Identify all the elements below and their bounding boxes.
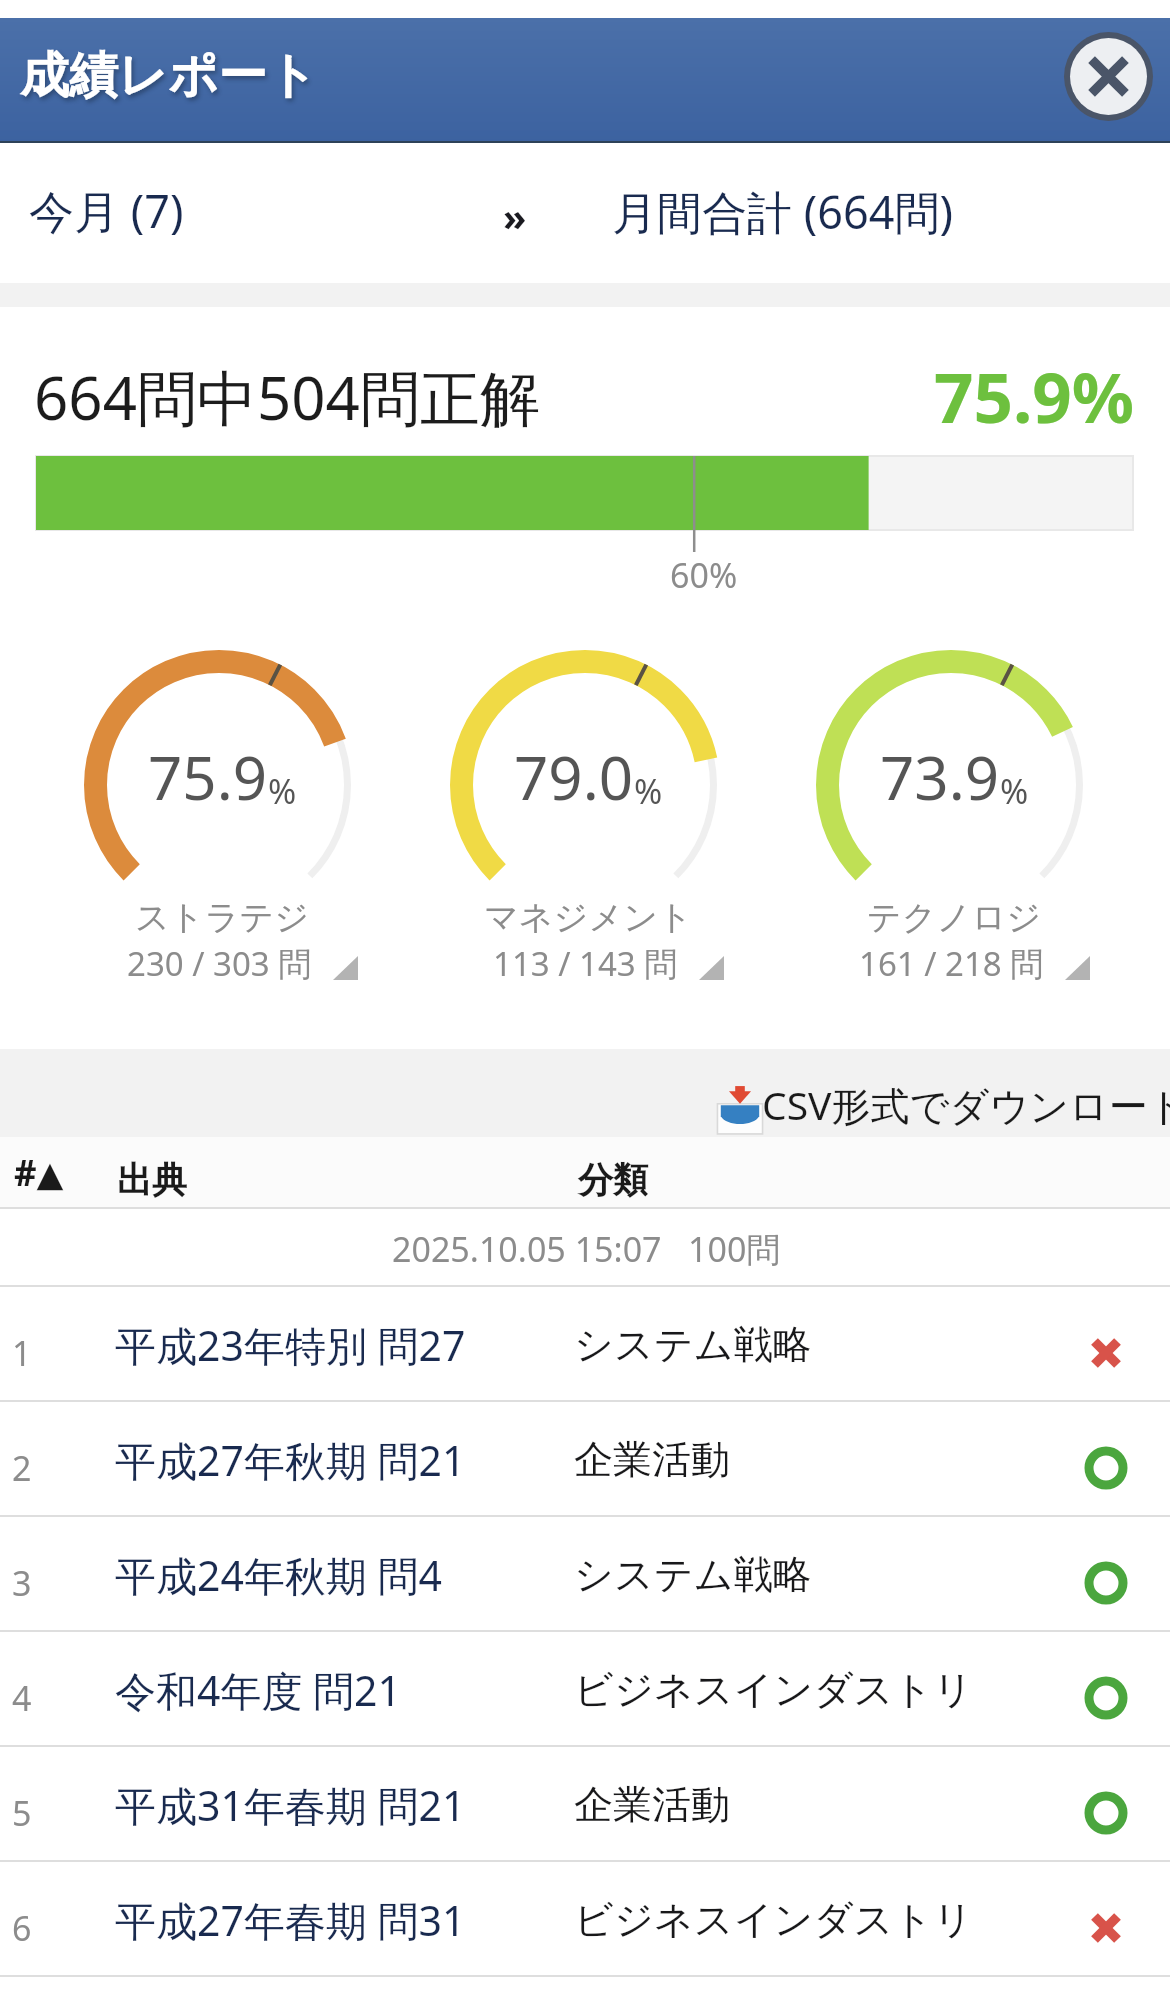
button[interactable]: 6 [0, 1862, 1170, 1977]
button[interactable]: 月間合計 (664問) [592, 163, 972, 263]
staticText: 4 [12, 1675, 32, 1721]
button[interactable]: 1 [0, 1287, 1170, 1402]
staticText: 5 [12, 1790, 32, 1836]
staticText: 平成31年春期 問21 [115, 1777, 466, 1833]
staticText: % [634, 768, 663, 814]
staticText: 75.9 [148, 736, 268, 818]
button[interactable]: 75.9 [36, 648, 402, 1049]
staticText: CSV形式でダウンロード [762, 1078, 1170, 1131]
staticText: システム戦略 [574, 1550, 812, 1599]
button[interactable]: 79.0 [402, 648, 768, 1049]
staticText: 令和4年度 問21 [115, 1662, 402, 1718]
staticText: 1 [12, 1330, 32, 1376]
staticText: 161 / 218 問 [859, 941, 1044, 986]
staticText: 平成27年秋期 問21 [115, 1432, 466, 1488]
button[interactable]: 4 [0, 1632, 1170, 1747]
button[interactable]: CSV形式でダウンロード [705, 1049, 1170, 1137]
staticText: 成績レポート [20, 45, 318, 107]
staticText: 出典 [117, 1158, 187, 1202]
button[interactable]: 2 [0, 1402, 1170, 1517]
staticText: ビジネスインダストリ [574, 1895, 974, 1944]
staticText: 企業活動 [574, 1435, 730, 1484]
button[interactable]: Close [1064, 32, 1153, 121]
staticText: ストラテジ [135, 896, 309, 939]
staticText: % [1000, 768, 1029, 814]
staticText: システム戦略 [574, 1320, 812, 1369]
staticText: 平成27年春期 問31 [115, 1892, 466, 1948]
staticText: 2025.10.05 15:07 100問 [392, 1226, 781, 1272]
staticText: 75.9% [934, 349, 1135, 443]
staticText: 230 / 303 問 [127, 941, 312, 986]
staticText: 664問中504問正解 [34, 356, 540, 438]
staticText: 60% [670, 552, 738, 598]
staticText: » [503, 190, 527, 242]
staticText: 平成24年秋期 問4 [115, 1547, 443, 1603]
staticText: 73.9 [880, 736, 1000, 818]
staticText: 6 [12, 1905, 32, 1951]
staticText: 2 [12, 1445, 32, 1491]
staticText: 113 / 143 問 [493, 941, 678, 986]
staticText: % [268, 768, 297, 814]
staticText: 平成23年特別 問27 [115, 1317, 466, 1373]
staticText: 79.0 [514, 736, 634, 818]
button[interactable]: 3 [0, 1517, 1170, 1632]
staticText: マネジメント [484, 896, 693, 939]
button[interactable]: 5 [0, 1747, 1170, 1862]
staticText: #▲ [14, 1149, 64, 1197]
button[interactable]: 73.9 [768, 648, 1134, 1049]
staticText: 分類 [578, 1158, 648, 1202]
button[interactable]: 今月 (7) [10, 163, 210, 263]
staticText: 3 [12, 1560, 32, 1606]
staticText: 月間合計 (664問) [612, 181, 953, 242]
staticText: テクノロジ [867, 896, 1041, 939]
staticText: 今月 (7) [29, 180, 184, 241]
staticText: ビジネスインダストリ [574, 1665, 974, 1714]
staticText: 企業活動 [574, 1780, 730, 1829]
